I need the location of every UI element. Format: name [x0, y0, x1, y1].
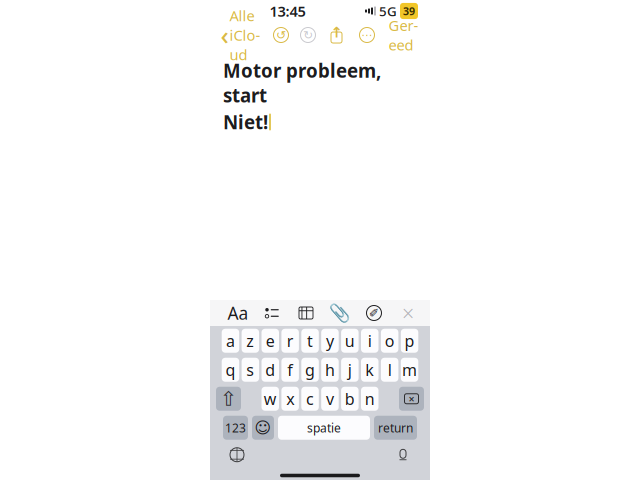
- staticText: ⇧: [220, 387, 237, 410]
- staticText: ×: [402, 299, 414, 327]
- button[interactable]: k: [361, 358, 378, 382]
- button[interactable]: m: [401, 358, 418, 382]
- staticText: e: [266, 330, 275, 351]
- button[interactable]: Gereed: [385, 11, 421, 58]
- button[interactable]: n: [361, 387, 378, 411]
- button[interactable]: Dictate: [391, 444, 415, 466]
- button[interactable]: f: [281, 358, 299, 382]
- button[interactable]: y: [321, 329, 339, 353]
- button[interactable]: g: [301, 358, 319, 382]
- button[interactable]: ‹: [216, 2, 264, 68]
- button[interactable]: Switch keyboard: [225, 444, 249, 466]
- staticText: l: [388, 359, 392, 380]
- staticText: q: [225, 359, 235, 380]
- button[interactable]: v: [321, 387, 339, 411]
- button[interactable]: Share: [326, 23, 346, 46]
- staticText: z: [246, 330, 254, 351]
- button[interactable]: j: [341, 358, 359, 382]
- staticText: 5G: [379, 2, 397, 20]
- staticText: j: [348, 359, 352, 380]
- staticText: n: [365, 388, 375, 409]
- staticText: Gereed: [388, 15, 418, 54]
- staticText: k: [365, 359, 374, 380]
- button[interactable]: More: [356, 24, 377, 45]
- button[interactable]: Delete: [399, 387, 424, 411]
- button[interactable]: w: [261, 387, 279, 411]
- staticText: Niet!: [223, 110, 268, 134]
- staticText: b: [345, 388, 355, 409]
- staticText: p: [405, 330, 415, 351]
- staticText: v: [326, 388, 334, 409]
- button[interactable]: Undo: [270, 24, 291, 45]
- button[interactable]: Attach: [327, 301, 353, 325]
- button[interactable]: Emoji: [252, 416, 274, 440]
- button[interactable]: Checklist: [259, 301, 285, 325]
- button[interactable]: c: [301, 387, 319, 411]
- staticText: Motor probleem, start: [223, 58, 381, 108]
- staticText: o: [385, 330, 395, 351]
- staticText: Alle iCloud: [229, 6, 260, 64]
- button[interactable]: Close keyboard: [395, 301, 421, 325]
- button[interactable]: q: [222, 358, 239, 382]
- staticText: 39: [403, 4, 415, 18]
- button[interactable]: t: [301, 329, 319, 353]
- button[interactable]: z: [242, 329, 259, 353]
- button[interactable]: x: [281, 387, 299, 411]
- staticText: 13:45: [269, 1, 305, 21]
- staticText: u: [345, 330, 355, 351]
- button[interactable]: e: [261, 329, 279, 353]
- button[interactable]: Table: [293, 301, 319, 325]
- staticText: ↻: [303, 28, 313, 42]
- staticText: 📎: [329, 303, 351, 323]
- button[interactable]: r: [281, 329, 299, 353]
- staticText: a: [226, 330, 235, 351]
- button[interactable]: Markup: [361, 301, 387, 325]
- button[interactable]: 123: [223, 416, 248, 440]
- button[interactable]: i: [361, 329, 378, 353]
- button[interactable]: Shift: [216, 387, 241, 411]
- staticText: t: [307, 330, 313, 351]
- staticText: 123: [225, 420, 246, 436]
- staticText: s: [246, 359, 254, 380]
- button[interactable]: h: [321, 358, 339, 382]
- staticText: ↑: [330, 24, 342, 41]
- staticText: g: [305, 359, 315, 380]
- staticText: d: [265, 359, 275, 380]
- staticText: c: [306, 388, 314, 409]
- button[interactable]: s: [242, 358, 259, 382]
- button[interactable]: b: [341, 387, 359, 411]
- staticText: ↺: [276, 28, 286, 42]
- staticText: r: [287, 330, 294, 351]
- button[interactable]: d: [261, 358, 279, 382]
- staticText: return: [378, 420, 413, 436]
- staticText: ⋯: [361, 29, 372, 41]
- staticText: x: [286, 388, 294, 409]
- button[interactable]: l: [381, 358, 398, 382]
- staticText: f: [287, 359, 293, 380]
- button[interactable]: p: [401, 329, 418, 353]
- staticText: y: [326, 330, 334, 351]
- staticText: h: [325, 359, 335, 380]
- staticText: spatie: [307, 420, 341, 436]
- button[interactable]: Redo: [297, 24, 318, 45]
- staticText: ☺: [254, 419, 271, 437]
- staticText: ✐: [369, 306, 379, 320]
- button[interactable]: a: [222, 329, 239, 353]
- staticText: i: [368, 330, 372, 351]
- button[interactable]: u: [341, 329, 359, 353]
- button[interactable]: spatie: [278, 416, 370, 440]
- button[interactable]: return: [374, 416, 417, 440]
- staticText: m: [402, 359, 417, 380]
- staticText: Aa: [227, 301, 248, 324]
- button[interactable]: o: [381, 329, 398, 353]
- button[interactable]: Aa: [225, 301, 251, 325]
- staticText: ‹: [220, 18, 228, 52]
- staticText: w: [264, 388, 277, 409]
- staticText: ×: [408, 392, 414, 406]
